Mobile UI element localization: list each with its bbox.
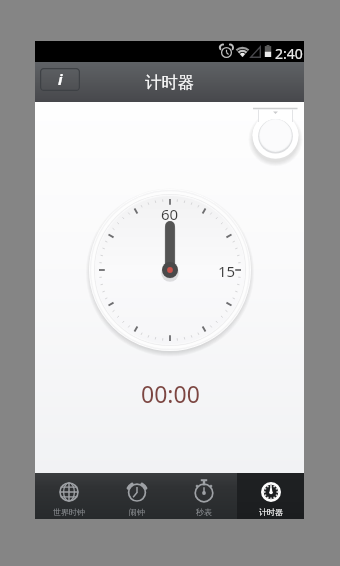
staticText: 计时器 (145, 72, 195, 93)
button[interactable]: 闹钟 (103, 473, 170, 519)
staticText: 2:40 (275, 44, 303, 63)
button[interactable]: 世界时钟 (35, 473, 103, 519)
button[interactable]: 计时器 (237, 473, 304, 519)
staticText: 世界时钟 (53, 507, 85, 517)
staticText: i (58, 69, 63, 89)
button[interactable]: 秒表 (170, 473, 237, 519)
staticText: 闹钟 (129, 507, 145, 517)
staticText: 15 (218, 261, 236, 281)
staticText: 00:00 (141, 378, 200, 404)
staticText: 60 (161, 204, 179, 224)
button[interactable]: Info (40, 68, 80, 91)
staticText: 计时器 (259, 507, 283, 517)
staticText: 秒表 (196, 507, 212, 517)
